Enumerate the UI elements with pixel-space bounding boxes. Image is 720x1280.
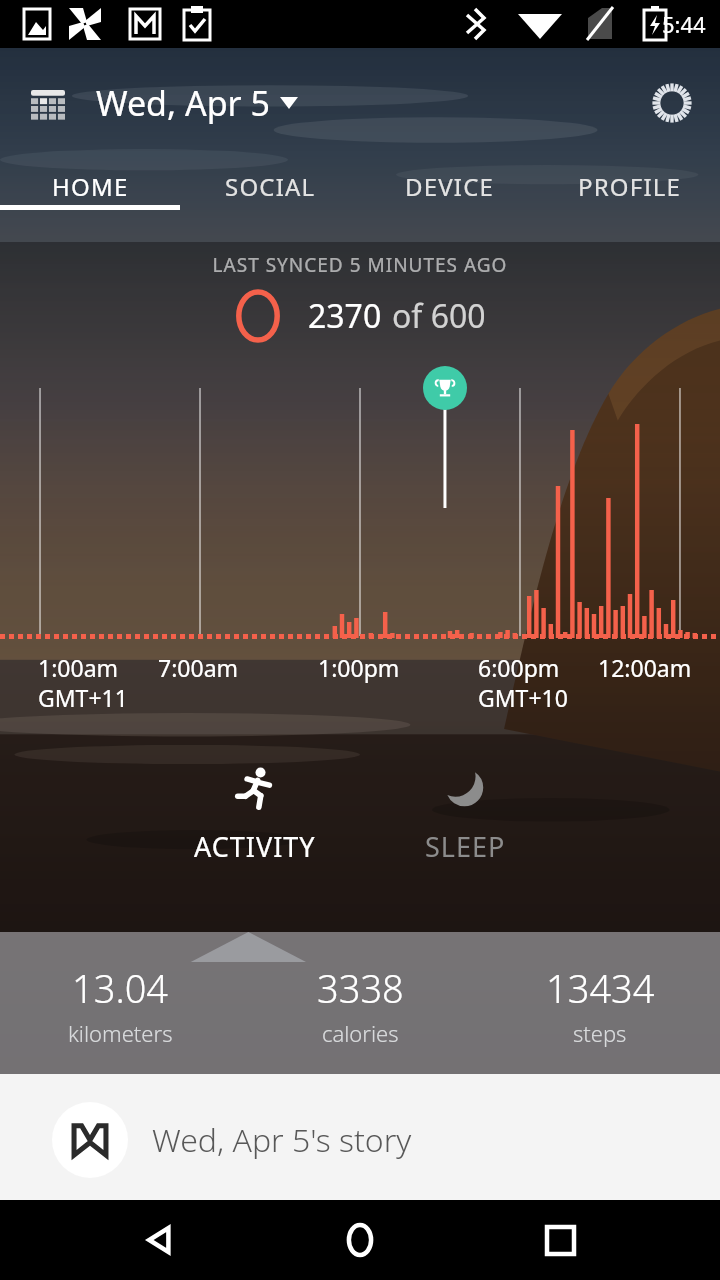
staticText: 6:00pm	[478, 652, 560, 683]
staticText: 1:00am	[38, 652, 119, 683]
staticText: PROFILE	[578, 170, 682, 203]
button[interactable]: Wed, Apr 5's story	[52, 1102, 720, 1178]
button[interactable]: PROFILE	[540, 158, 720, 242]
staticText: 1:00pm	[318, 652, 400, 683]
staticText: LAST SYNCED 5 MINUTES AGO	[0, 252, 720, 278]
staticText: calories	[322, 1018, 399, 1048]
button[interactable]: Goal reached	[423, 366, 467, 410]
staticText: steps	[573, 1018, 627, 1048]
staticText: Wed, Apr 5	[96, 80, 270, 126]
staticText: DEVICE	[405, 170, 495, 203]
staticText: 13.04	[72, 962, 169, 1014]
button[interactable]: Calendar	[22, 77, 74, 129]
button[interactable]: DEVICE	[360, 158, 540, 242]
staticText: kilometers	[68, 1018, 173, 1048]
button[interactable]: SLEEP	[365, 766, 565, 865]
button[interactable]: Home	[320, 1200, 400, 1280]
button[interactable]: ACTIVITY	[155, 766, 355, 865]
staticText: SOCIAL	[225, 170, 316, 203]
button[interactable]: Back	[120, 1200, 200, 1280]
staticText: SLEEP	[425, 828, 506, 865]
staticText: 7:00am	[158, 652, 239, 683]
staticText: GMT+11	[38, 682, 128, 713]
staticText: 5:44	[662, 9, 706, 39]
staticText: GMT+10	[478, 682, 568, 713]
staticText: HOME	[52, 170, 129, 203]
button[interactable]: Sync	[646, 77, 698, 129]
staticText: 3338	[317, 962, 404, 1014]
staticText: 12:00am	[598, 652, 692, 683]
button[interactable]: Wed, Apr 5	[96, 80, 298, 126]
button[interactable]: Recents	[520, 1200, 600, 1280]
staticText: ACTIVITY	[194, 828, 316, 865]
staticText: of 600	[392, 294, 486, 338]
staticText: 13434	[546, 962, 655, 1014]
button[interactable]: SOCIAL	[180, 158, 360, 242]
staticText: Wed, Apr 5's story	[152, 1118, 412, 1162]
staticText: 2370	[308, 294, 382, 338]
button[interactable]: 13.04	[0, 962, 240, 1048]
button[interactable]: HOME	[0, 158, 180, 242]
button[interactable]: 3338	[240, 962, 480, 1048]
button[interactable]: 13434	[480, 962, 720, 1048]
